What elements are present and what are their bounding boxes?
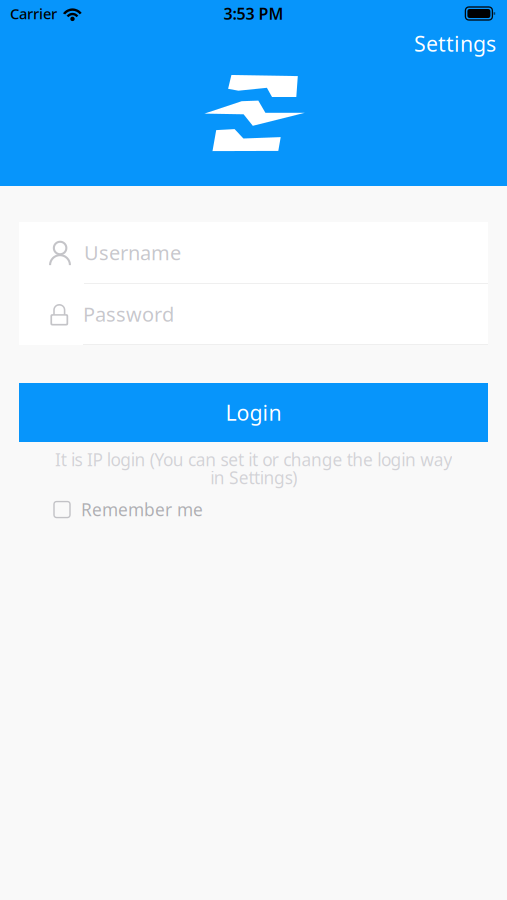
button[interactable]: Login: [19, 383, 488, 442]
staticText: Username: [84, 239, 181, 266]
button[interactable]: Settings: [402, 27, 507, 60]
staticText: Remember me: [81, 498, 203, 521]
staticText: It is IP login (You can set it or change…: [55, 448, 452, 489]
staticText: Login: [225, 398, 281, 427]
staticText: Carrier: [10, 4, 57, 23]
staticText: Password: [83, 301, 174, 327]
staticText: 3:53 PM: [223, 3, 283, 24]
button[interactable]: Remember me: [54, 493, 203, 526]
staticText: Settings: [414, 29, 496, 58]
